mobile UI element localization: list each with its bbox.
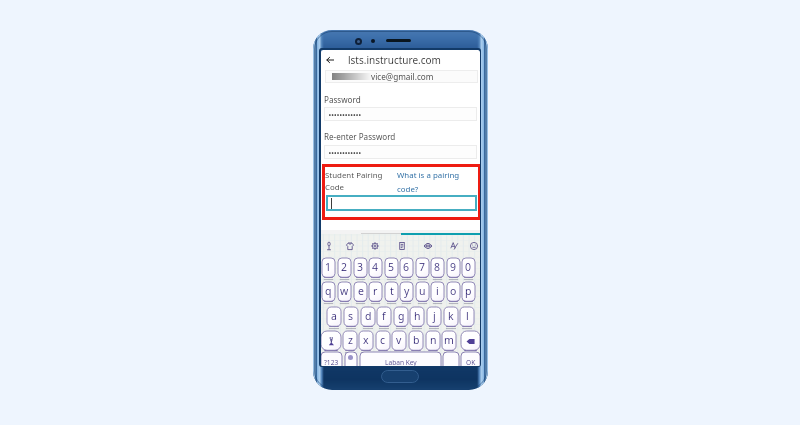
staticText: x — [363, 333, 369, 347]
button[interactable]: 1 — [322, 258, 335, 280]
button[interactable]: 3 — [354, 258, 367, 280]
staticText: a — [331, 309, 337, 323]
staticText: w — [340, 284, 349, 298]
button[interactable]: Shift — [321, 331, 341, 353]
button[interactable]: 6 — [400, 258, 413, 280]
button[interactable]: 4 — [369, 258, 382, 280]
staticText: d — [365, 309, 372, 323]
button[interactable]: a — [327, 307, 341, 329]
button[interactable]: s — [344, 307, 358, 329]
button[interactable]: m — [442, 331, 456, 353]
button[interactable]: Emoji — [467, 239, 480, 252]
staticText: 8 — [434, 260, 441, 274]
staticText: j — [433, 309, 436, 323]
button[interactable]: k — [444, 307, 458, 329]
button[interactable]: q — [322, 282, 335, 304]
button[interactable]: t — [385, 282, 398, 304]
button[interactable]: Stickers — [343, 239, 356, 252]
button[interactable]: Settings — [368, 239, 381, 252]
button[interactable]: w — [338, 282, 351, 304]
button[interactable]: Backspace — [461, 331, 480, 353]
staticText: Laban Key — [385, 358, 417, 366]
button[interactable]: 0 — [462, 258, 475, 280]
button[interactable] — [326, 195, 477, 211]
staticText: p — [465, 284, 472, 298]
button[interactable]: d — [361, 307, 375, 329]
staticText: 5 — [388, 260, 395, 274]
button[interactable]: j — [427, 307, 441, 329]
staticText: i — [436, 284, 439, 298]
button[interactable]: ?123 — [321, 352, 342, 366]
button[interactable]: h — [410, 307, 424, 329]
staticText: 1 — [325, 260, 332, 274]
button[interactable]: 7 — [416, 258, 429, 280]
button[interactable]: o — [447, 282, 460, 304]
button[interactable]: p — [462, 282, 475, 304]
staticText: m — [444, 333, 454, 347]
button[interactable]: Resize — [421, 239, 434, 252]
button[interactable]: g — [394, 307, 408, 329]
button[interactable]: n — [426, 331, 440, 353]
button[interactable]: Laban Key — [360, 352, 441, 366]
button[interactable]: b — [409, 331, 423, 353]
button[interactable]: Clipboard — [395, 239, 408, 252]
staticText: q — [325, 284, 332, 298]
staticText: Student Pairing Code — [325, 170, 383, 192]
staticText: 7 — [419, 260, 426, 274]
button[interactable]: 8 — [431, 258, 444, 280]
button[interactable]: What is a pairing code? — [397, 170, 460, 194]
staticText: z — [348, 333, 353, 347]
staticText: 6 — [403, 260, 410, 274]
button[interactable]: OK — [461, 352, 480, 366]
staticText: 4 — [372, 260, 379, 274]
button[interactable]: Voice input — [322, 239, 335, 252]
staticText: 0 — [465, 260, 472, 274]
button[interactable]: l — [460, 307, 474, 329]
button[interactable]: r — [369, 282, 382, 304]
button[interactable]: z — [343, 331, 357, 353]
staticText: Re-enter Password — [324, 131, 396, 142]
staticText: 2 — [341, 260, 348, 274]
button[interactable] — [345, 352, 357, 366]
staticText: lsts.instructure.com — [348, 53, 441, 67]
staticText: y — [404, 284, 410, 298]
staticText: h — [414, 309, 421, 323]
staticText: vice@gmail.com — [371, 71, 434, 82]
staticText: k — [448, 309, 454, 323]
button[interactable] — [443, 352, 459, 366]
button[interactable]: v — [392, 331, 406, 353]
button[interactable]: Handwriting — [447, 239, 460, 252]
staticText: r — [373, 284, 378, 298]
staticText: 9 — [450, 260, 457, 274]
staticText: Password — [324, 94, 361, 105]
staticText: OK — [466, 358, 476, 366]
button[interactable]: f — [377, 307, 391, 329]
staticText: ?123 — [324, 358, 339, 366]
staticText: u — [419, 284, 426, 298]
staticText: l — [466, 309, 469, 323]
staticText: 3 — [357, 260, 364, 274]
button[interactable]: i — [431, 282, 444, 304]
button[interactable]: 2 — [338, 258, 351, 280]
button[interactable]: e — [354, 282, 367, 304]
staticText: s — [348, 309, 354, 323]
button[interactable]: x — [359, 331, 373, 353]
staticText: b — [413, 333, 420, 347]
staticText: v — [396, 333, 402, 347]
button[interactable]: c — [376, 331, 390, 353]
button[interactable]: u — [416, 282, 429, 304]
staticText: t — [390, 284, 394, 298]
staticText: f — [382, 309, 386, 323]
staticText: o — [450, 284, 457, 298]
button[interactable]: 5 — [385, 258, 398, 280]
staticText: g — [398, 309, 405, 323]
button[interactable]: 9 — [447, 258, 460, 280]
staticText: e — [358, 284, 364, 298]
button[interactable]: y — [400, 282, 413, 304]
staticText: n — [430, 333, 437, 347]
button[interactable]: Back — [321, 50, 339, 69]
staticText: c — [380, 333, 386, 347]
